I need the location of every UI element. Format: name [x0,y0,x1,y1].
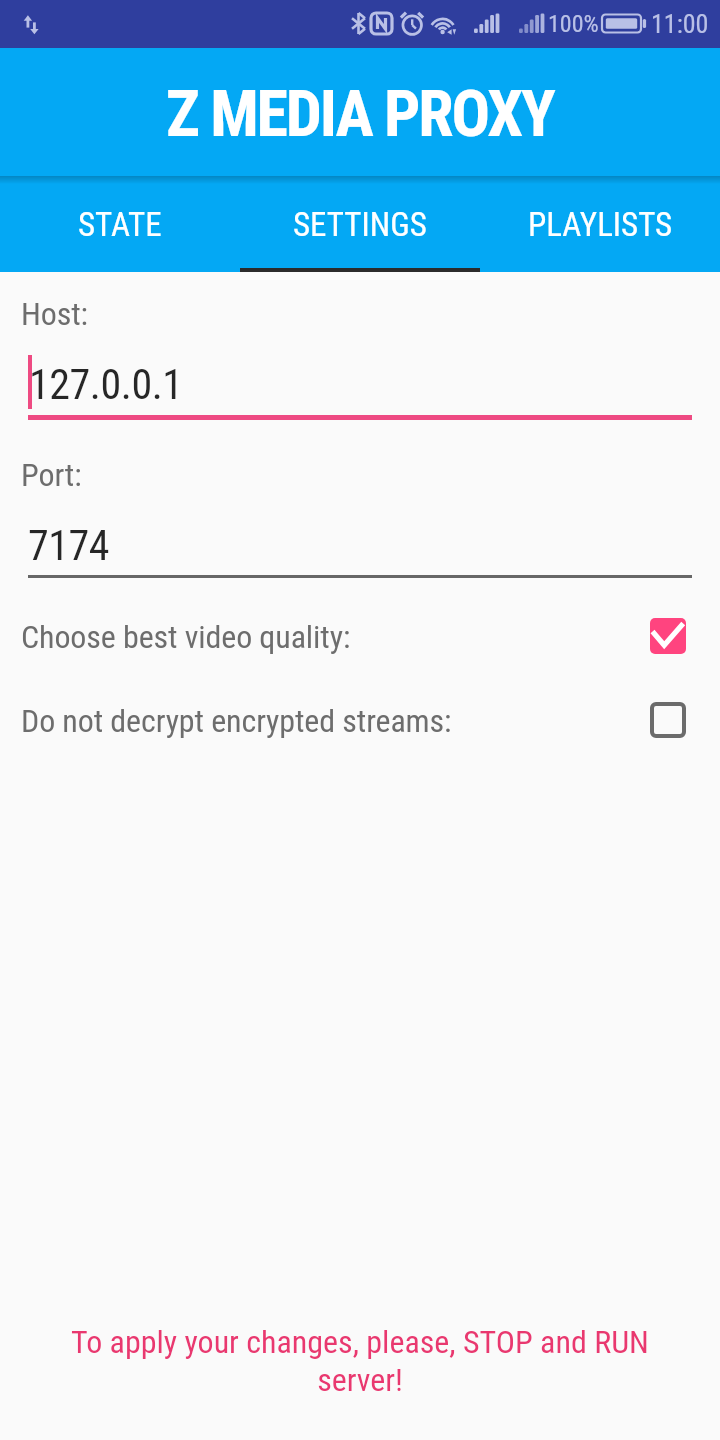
staticText: 11:00 [651,9,709,39]
staticText: 100% [548,10,599,38]
staticText: PLAYLISTS [528,205,673,244]
staticText: Port: [21,456,82,494]
other: Status bar [0,0,720,48]
staticText: Z MEDIA PROXY [166,77,554,152]
staticText: 127.0.0.1 [29,360,183,409]
staticText: Host: [21,295,88,333]
staticText: To apply your changes, please, STOP and … [60,1323,660,1399]
button[interactable]: 127.0.0.1 [0,346,720,418]
staticText: 7174 [28,521,110,570]
button[interactable]: PLAYLISTS [480,176,720,272]
button[interactable]: SETTINGS [240,176,480,272]
button[interactable]: Do not decrypt encrypted streams: [0,692,720,748]
staticText: STATE [78,205,162,244]
button[interactable]: Choose best video quality: [0,608,720,664]
staticText: Do not decrypt encrypted streams: [21,702,452,740]
button[interactable]: STATE [0,176,240,272]
staticText: SETTINGS [293,205,427,244]
staticText: Choose best video quality: [21,618,351,656]
button[interactable]: 7174 [0,507,720,579]
